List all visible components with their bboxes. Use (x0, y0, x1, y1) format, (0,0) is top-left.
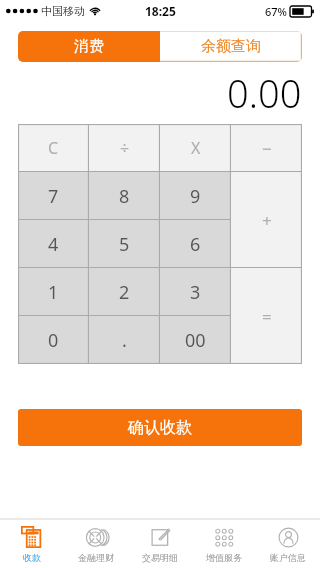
staticText: 18:25 (145, 3, 176, 19)
button[interactable]: Equals (231, 268, 302, 364)
staticText: 账户信息 (270, 552, 306, 563)
staticText: 00 (185, 328, 206, 353)
button[interactable]: 4 (18, 220, 89, 268)
staticText: + (262, 209, 272, 232)
button[interactable]: 9 (160, 172, 231, 220)
staticText: 0.00 (227, 67, 302, 119)
button[interactable]: 消费 (18, 31, 160, 62)
button[interactable]: 确认收款 (18, 409, 302, 446)
staticText: 8 (119, 184, 130, 209)
button[interactable]: 5 (89, 220, 160, 268)
button[interactable]: . (89, 316, 160, 364)
staticText: 6 (190, 232, 201, 257)
button[interactable]: 金融理财 (64, 520, 128, 568)
button[interactable]: X (160, 124, 231, 172)
button[interactable]: C (18, 124, 89, 172)
button[interactable]: Plus (231, 172, 302, 268)
button[interactable]: 8 (89, 172, 160, 220)
button[interactable]: 余额查询 (160, 31, 302, 62)
staticText: 0 (48, 328, 59, 353)
staticText: 收款 (23, 552, 41, 563)
button[interactable]: 6 (160, 220, 231, 268)
button[interactable]: 00 (160, 316, 231, 364)
staticText: 交易明细 (142, 552, 178, 563)
staticText: . (122, 328, 127, 353)
staticText: ÷ (120, 137, 130, 159)
staticText: 消费 (74, 37, 104, 56)
button[interactable]: 1 (18, 268, 89, 316)
staticText: 67% (265, 4, 287, 19)
button[interactable]: 增值服务 (192, 520, 256, 568)
button[interactable]: 0 (18, 316, 89, 364)
staticText: − (262, 137, 272, 160)
button[interactable]: ÷ (89, 124, 160, 172)
staticText: 确认收款 (128, 418, 192, 438)
button[interactable]: 收款 (0, 520, 64, 568)
staticText: 1 (48, 280, 59, 305)
staticText: 9 (190, 184, 201, 209)
staticText: 金融理财 (78, 552, 114, 563)
staticText: 4 (48, 232, 59, 257)
staticText: 2 (119, 280, 130, 305)
button[interactable]: 账户信息 (256, 520, 320, 568)
staticText: 增值服务 (206, 552, 242, 563)
staticText: X (191, 137, 201, 159)
button[interactable]: Minus (231, 124, 302, 172)
staticText: 中国移动 (41, 4, 85, 18)
staticText: = (262, 305, 272, 328)
button[interactable]: 3 (160, 268, 231, 316)
button[interactable]: 交易明细 (128, 520, 192, 568)
staticText: 3 (190, 280, 201, 305)
staticText: 5 (119, 232, 130, 257)
staticText: 7 (48, 184, 59, 209)
staticText: 余额查询 (201, 37, 261, 56)
button[interactable]: 7 (18, 172, 89, 220)
staticText: C (48, 137, 59, 159)
button[interactable]: 2 (89, 268, 160, 316)
